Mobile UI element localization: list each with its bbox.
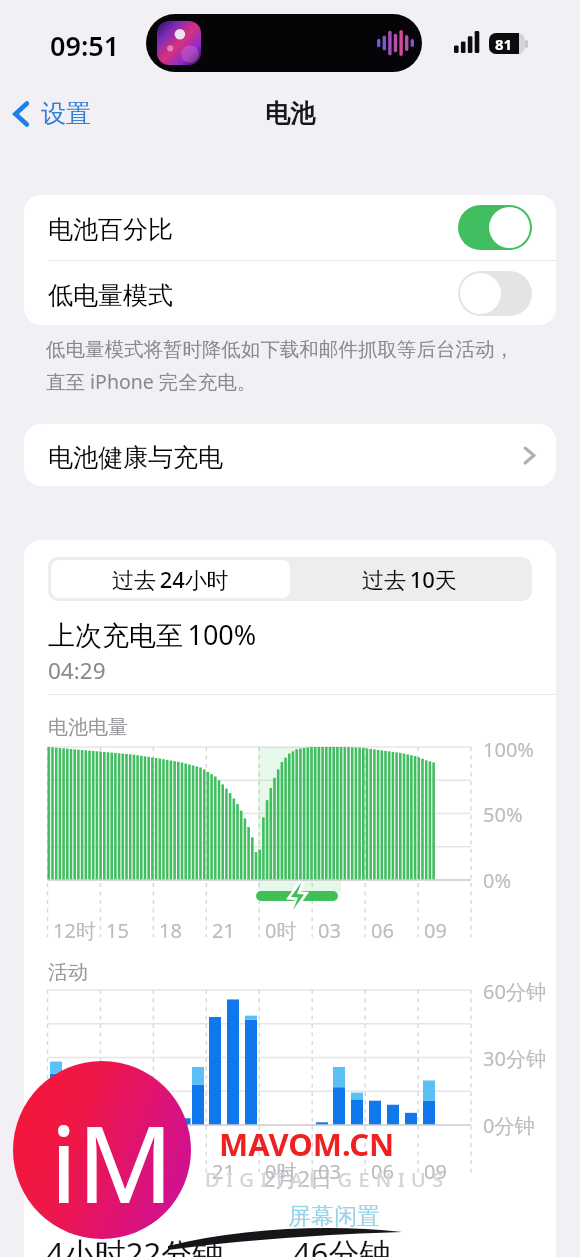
button[interactable]: 过去 24小时 [51, 560, 290, 598]
staticText: 06 [371, 917, 394, 944]
staticText: 过去 24小时 [112, 564, 229, 594]
staticText: 活动 [48, 960, 88, 985]
staticText: 03 [318, 1158, 341, 1185]
staticText: 4小时22分钟 [46, 1232, 224, 1257]
button[interactable]: 电池百分比 [24, 195, 556, 260]
staticText: 18 [159, 1158, 182, 1185]
staticText: 0时 [265, 1158, 297, 1185]
staticText: 低电量模式将暂时降低如下载和邮件抓取等后台活动， [46, 337, 514, 362]
staticText: 03 [318, 917, 341, 944]
staticText: 21 [212, 1158, 235, 1185]
staticText: MAVOM.CN [219, 1123, 395, 1165]
staticText: 09:51 [50, 27, 120, 64]
staticText: 屏幕闲置 [288, 1202, 380, 1231]
staticText: 直至 iPhone 完全充电。 [46, 368, 257, 395]
staticText: 过去 10天 [362, 564, 457, 594]
staticText: 12时 [53, 917, 96, 944]
staticText: 06 [371, 1158, 394, 1185]
staticText: 上次充电至 100% [48, 616, 257, 653]
staticText: DIGITAL GENIUS [205, 1166, 450, 1193]
button[interactable]: 低电量模式 [24, 261, 556, 325]
staticText: 50% [483, 801, 523, 828]
staticText: 设置 [41, 98, 91, 129]
staticText: 81 [495, 34, 513, 54]
staticText: 04:29 [48, 655, 106, 686]
staticText: 21 [212, 917, 235, 944]
staticText: 100% [483, 736, 534, 763]
staticText: iM [50, 1090, 174, 1234]
staticText: 46分钟 [293, 1232, 391, 1257]
staticText: 0时 [265, 917, 297, 944]
staticText: 09 [424, 1158, 447, 1185]
staticText: 2月2日 [263, 1163, 333, 1193]
staticText: 0% [483, 867, 512, 894]
staticText: 30分钟 [483, 1045, 546, 1072]
staticText: 60分钟 [483, 978, 546, 1005]
staticText: 电池电量 [48, 715, 128, 740]
staticText: 电池健康与充电 [48, 442, 223, 473]
staticText: 12时 [53, 1158, 96, 1185]
button[interactable]: 过去 10天 [290, 560, 529, 598]
staticText: 18 [159, 917, 182, 944]
button[interactable]: 设置 [10, 92, 95, 135]
staticText: 低电量模式 [48, 280, 173, 311]
button[interactable]: 电池健康与充电 [24, 424, 556, 486]
staticText: 电池 [265, 98, 315, 129]
staticText: 0分钟 [483, 1112, 535, 1139]
staticText: 电池百分比 [48, 214, 173, 245]
staticText: 15 [106, 1158, 129, 1185]
staticText: 09 [424, 917, 447, 944]
staticText: 15 [106, 917, 129, 944]
